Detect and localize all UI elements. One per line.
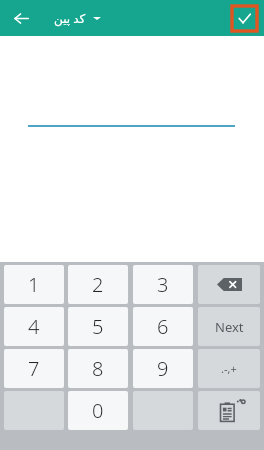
button[interactable]: 2 — [68, 265, 128, 304]
button[interactable]: 0 — [68, 391, 128, 430]
staticText: Next — [215, 318, 244, 336]
button[interactable]: Next — [198, 307, 260, 346]
button[interactable]: کد پین — [54, 10, 101, 26]
staticText: 6 — [157, 313, 169, 340]
button[interactable]: 4 — [4, 307, 64, 346]
button[interactable]: Back — [7, 4, 35, 32]
button[interactable]: 8 — [68, 349, 128, 388]
button[interactable]: 1 — [4, 265, 64, 304]
staticText: 7 — [28, 355, 40, 382]
button[interactable]: 5 — [68, 307, 128, 346]
button[interactable]: Symbols — [198, 349, 260, 388]
staticText: 0 — [92, 397, 104, 424]
button[interactable]: 3 — [133, 265, 193, 304]
button[interactable]: Clipboard — [198, 391, 260, 430]
staticText: .-,+ — [221, 361, 237, 376]
button[interactable]: Confirm — [232, 6, 257, 31]
staticText: 1 — [28, 271, 40, 298]
button[interactable]: 7 — [4, 349, 64, 388]
staticText: 8 — [92, 355, 104, 382]
button[interactable]: 6 — [133, 307, 193, 346]
staticText: 5 — [92, 313, 104, 340]
staticText: 2 — [92, 271, 104, 298]
staticText: 3 — [157, 271, 169, 298]
button[interactable]: 9 — [133, 349, 193, 388]
staticText: 4 — [28, 313, 40, 340]
staticText: 9 — [157, 355, 169, 382]
staticText: کد پین — [54, 10, 86, 26]
button[interactable]: Backspace — [198, 265, 260, 304]
